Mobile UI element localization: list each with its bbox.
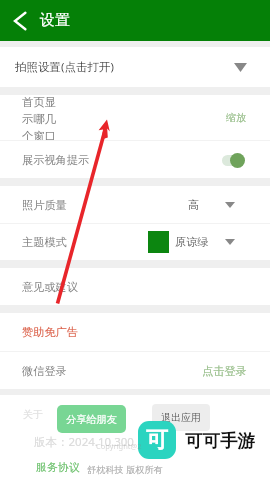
staticText: 缩放 — [226, 111, 246, 124]
staticText: 舒枕科技 版权所有 — [87, 463, 163, 476]
button[interactable]: 展示视角提示 — [0, 141, 270, 178]
staticText: 退出应用 — [161, 411, 201, 424]
staticText: 展示视角提示 — [22, 153, 90, 167]
staticText: 设置 — [40, 11, 70, 30]
button[interactable]: 意见或建议 — [0, 268, 270, 305]
staticText: Copyright@2 — [96, 441, 142, 451]
staticText: 关于 — [23, 408, 43, 421]
staticText: 分享给朋友 — [66, 413, 117, 426]
staticText: 微信登录 — [22, 364, 67, 378]
button[interactable]: 微信登录 — [0, 352, 270, 389]
staticText: 版本：2024.10.300 — [34, 434, 134, 450]
staticText: 照片质量 — [22, 198, 67, 212]
staticText: 可 — [146, 426, 168, 454]
button[interactable]: 服务协议 — [36, 461, 80, 475]
staticText: 拍照设置(点击打开) — [15, 59, 114, 75]
button[interactable]: 照片质量 — [0, 186, 270, 223]
staticText: 点击登录 — [202, 364, 247, 378]
staticText: 服务协议 — [36, 461, 80, 475]
staticText: 原谅绿 — [175, 235, 209, 249]
button[interactable]: 分享给朋友 — [57, 405, 126, 433]
staticText: 意见或建议 — [22, 280, 78, 294]
button[interactable]: 赞助免广告 — [0, 313, 270, 351]
button[interactable]: 拍照设置(点击打开) — [0, 47, 270, 87]
button[interactable]: Back — [0, 0, 40, 41]
button[interactable]: 退出应用 — [152, 404, 210, 431]
staticText: 赞助免广告 — [22, 325, 78, 339]
button[interactable]: 首页显示哪几个窗口 — [0, 95, 270, 140]
staticText: 首页显示哪几个窗口 — [22, 95, 58, 140]
button[interactable]: 主题模式 — [0, 224, 270, 260]
staticText: 可可手游 — [185, 430, 255, 452]
staticText: 高 — [188, 198, 200, 212]
staticText: 主题模式 — [22, 235, 67, 249]
